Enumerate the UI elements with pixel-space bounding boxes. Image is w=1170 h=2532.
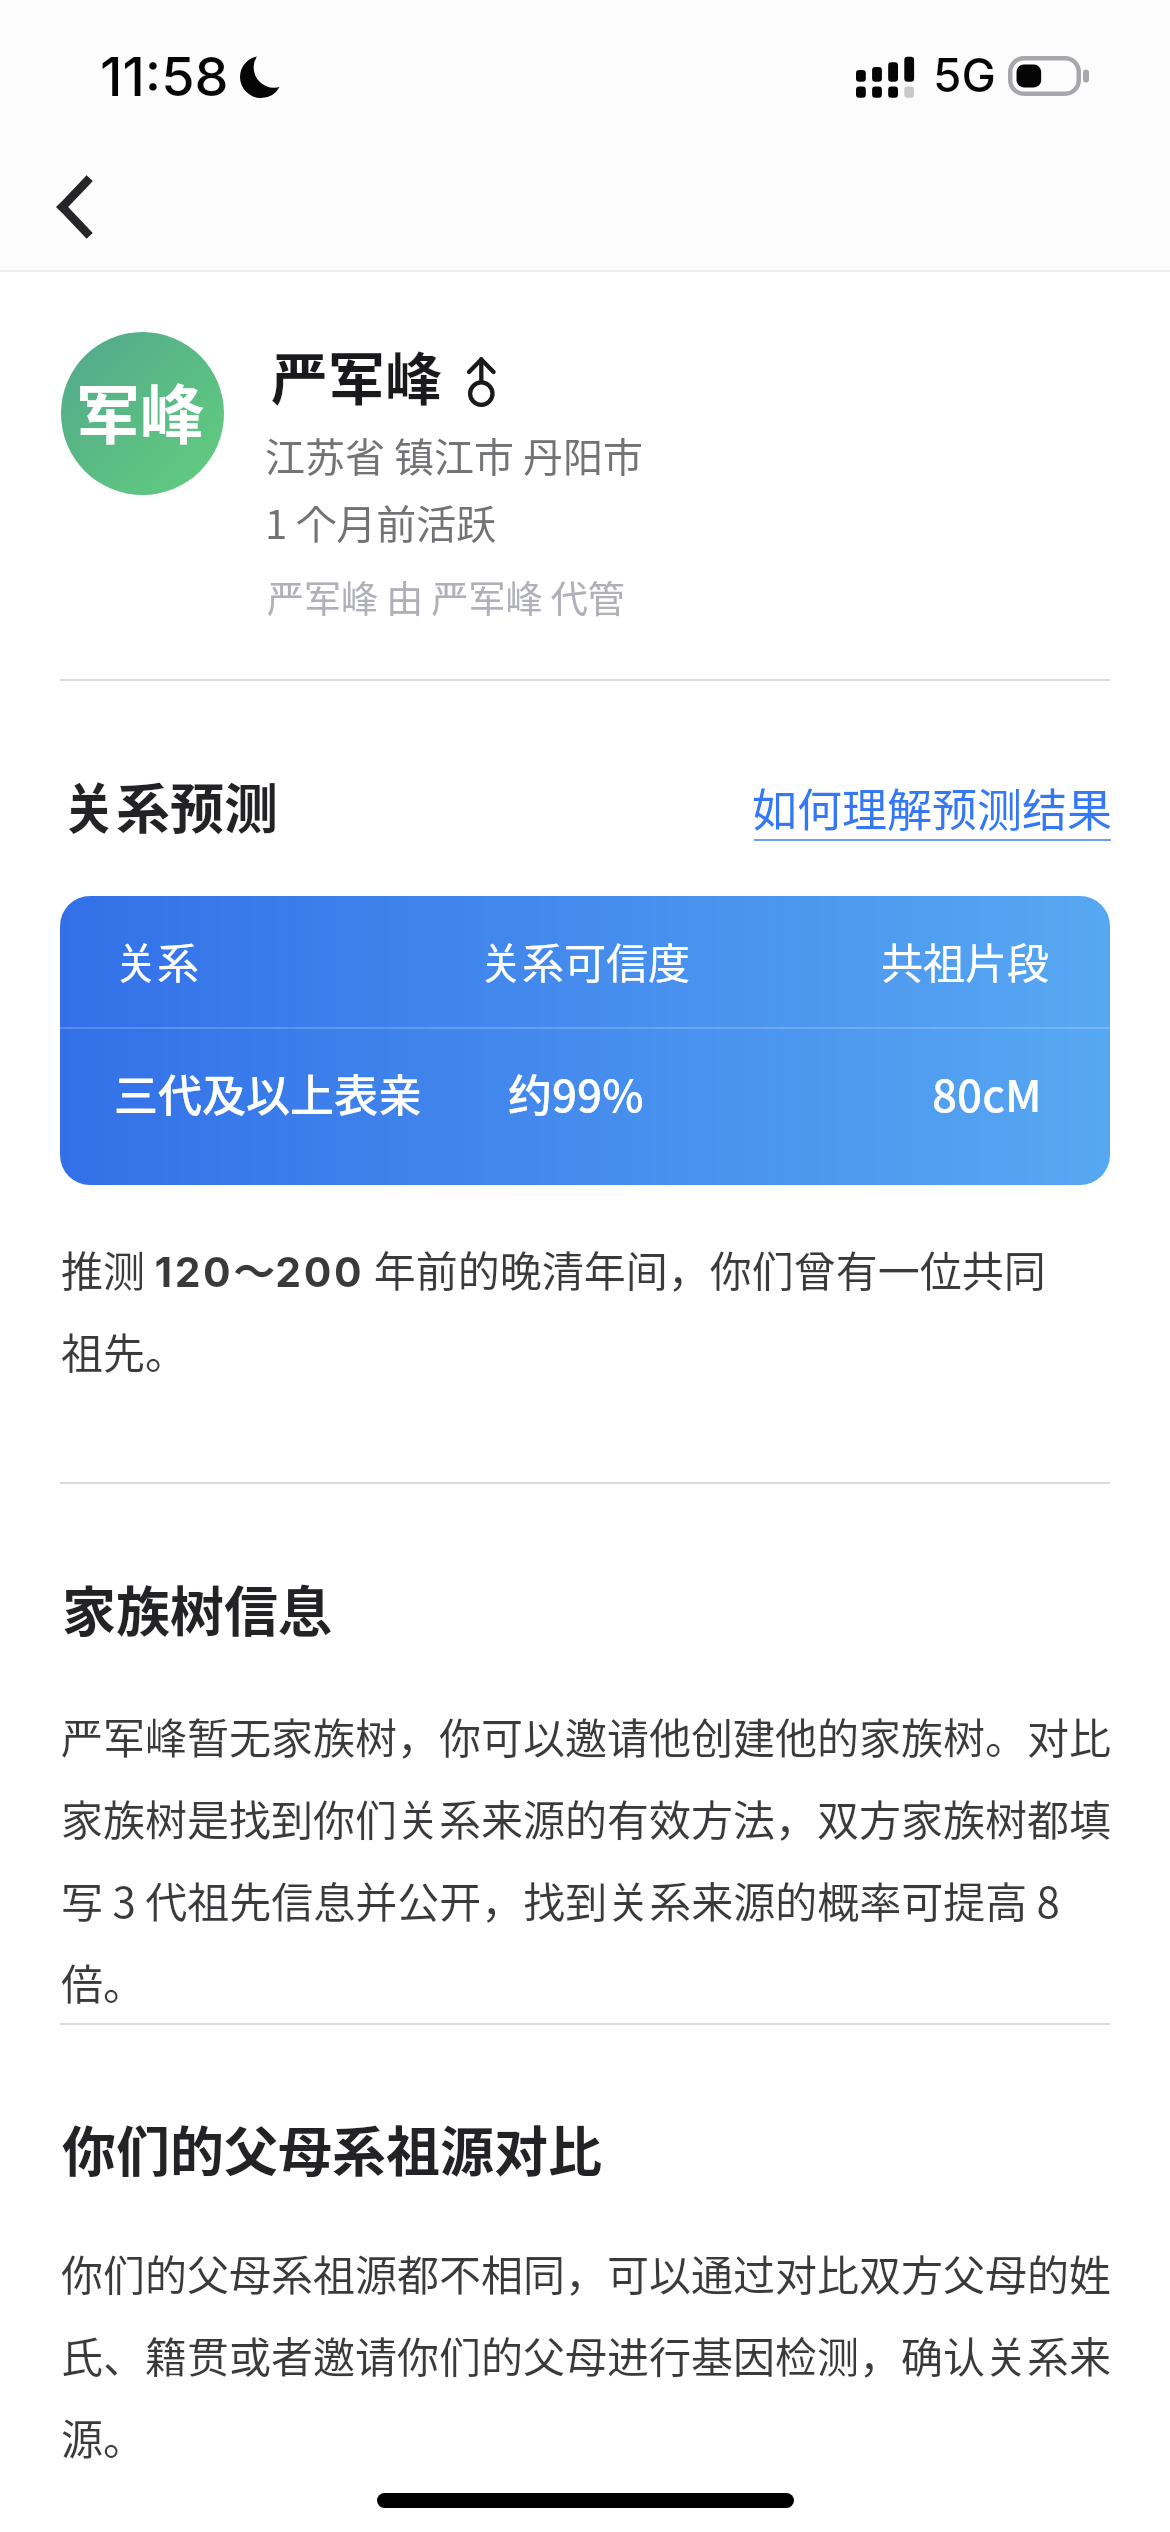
staticText: 家族树信息 [62,1569,332,1647]
staticText: 5G [933,47,996,103]
staticText: 关系 [115,930,200,991]
staticText: 你们的父母系祖源对比 [62,2109,602,2187]
staticText: 约99% [508,1061,644,1125]
staticText: 军峰 [76,364,204,457]
staticText: 如何理解预测结果 [752,775,1113,840]
staticText: 严军峰 [271,334,442,417]
staticText: 江苏省 镇江市 丹阳市 [265,426,643,484]
button[interactable]: Back [10,143,138,271]
button[interactable]: Avatar [61,332,224,495]
staticText: 关系可信度 [480,930,691,991]
button[interactable]: 关系 [60,896,1110,1185]
staticText: 推测 120～200 年前的晚清年间，你们曾有一位共同祖先。 [61,1238,1071,1381]
staticText: 关系预测 [62,766,278,844]
staticText: 11:58 [100,44,229,109]
staticText: 1 个月前活跃 [265,493,497,551]
staticText: 三代及以上表亲 [114,1061,422,1125]
staticText: 共祖片段 [881,930,1050,991]
staticText: 80cM [932,1061,1042,1125]
staticText: 你们的父母系祖源都不相同，可以通过对比双方父母的姓氏、籍贯或者邀请你们的父母进行… [61,2242,1111,2467]
button[interactable]: 如何理解预测结果 [752,775,1113,840]
staticText: 严军峰 由 严军峰 代管 [267,570,625,624]
staticText: 严军峰暂无家族树，你可以邀请他创建他的家族树。对比家族树是找到你们关系来源的有效… [61,1705,1111,2012]
